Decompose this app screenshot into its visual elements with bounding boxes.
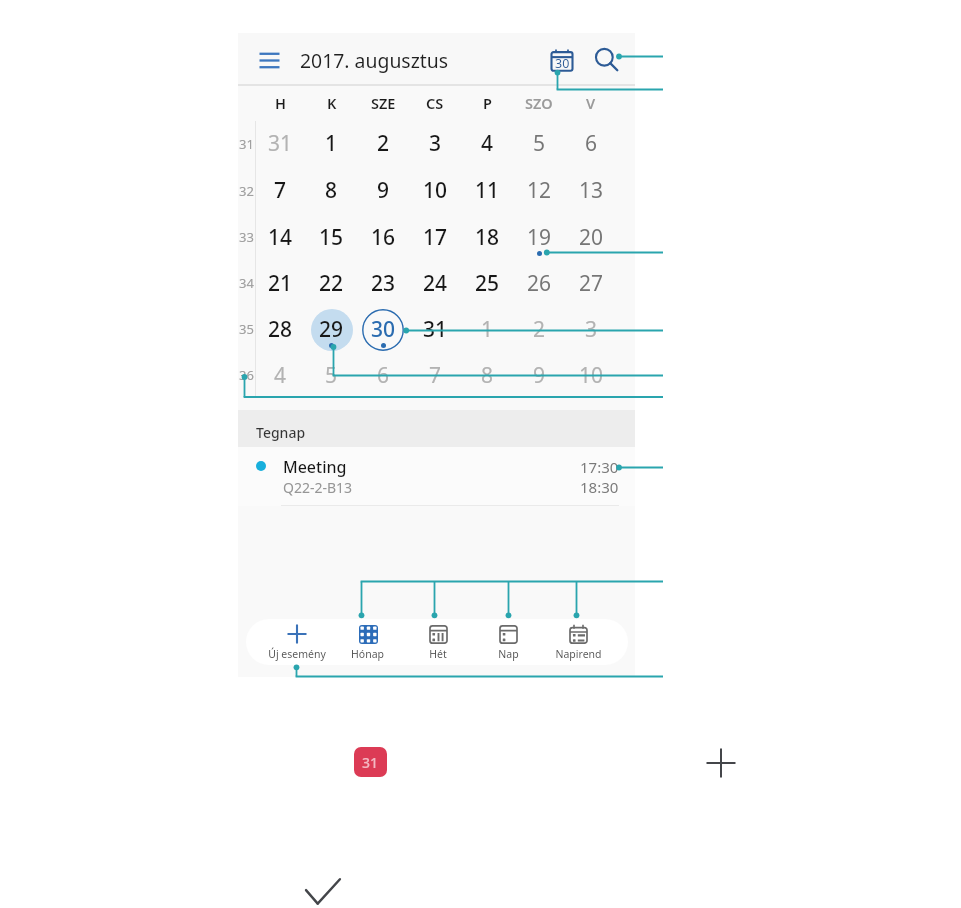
button[interactable]: Nap — [473, 619, 543, 665]
button[interactable]: 9 — [357, 168, 409, 215]
button[interactable]: 4 — [461, 121, 513, 168]
staticText: 12 — [527, 176, 552, 205]
button[interactable]: 27 — [565, 261, 617, 307]
staticText: 2 — [533, 315, 546, 344]
button[interactable]: 10 — [409, 168, 461, 215]
button[interactable]: 22 — [306, 261, 357, 307]
button[interactable]: Search — [589, 43, 623, 77]
button[interactable]: 25 — [461, 261, 513, 307]
staticText: 7 — [429, 361, 442, 390]
button[interactable]: 17 — [409, 215, 461, 261]
staticText: 18:30 — [580, 477, 619, 497]
button[interactable]: 15 — [306, 215, 357, 261]
staticText: 7 — [274, 176, 287, 205]
button[interactable]: 1 — [461, 307, 513, 353]
button[interactable]: Hónap — [332, 619, 403, 665]
button[interactable]: 10 — [565, 353, 617, 399]
button[interactable]: Hét — [403, 619, 473, 665]
button[interactable]: 3 — [565, 307, 617, 353]
button[interactable]: 13 — [565, 168, 617, 215]
staticText: 1 — [325, 129, 338, 158]
button[interactable]: 7 — [409, 353, 461, 399]
staticText: 31 — [239, 135, 254, 153]
staticText: 24 — [423, 269, 448, 298]
button[interactable]: Menu — [254, 45, 284, 75]
button[interactable]: 6 — [357, 353, 409, 399]
staticText: 10 — [579, 361, 604, 390]
staticText: 33 — [239, 228, 254, 246]
button[interactable]: 1 — [306, 121, 357, 168]
button[interactable]: Meeting — [238, 447, 635, 506]
staticText: 31 — [423, 315, 448, 344]
button[interactable]: 2 — [513, 307, 565, 353]
staticText: 26 — [527, 269, 552, 298]
staticText: Hónap — [351, 647, 384, 661]
staticText: 34 — [239, 274, 254, 292]
staticText: Nap — [498, 647, 519, 661]
button[interactable]: 29 — [306, 307, 357, 353]
staticText: 15 — [319, 223, 344, 252]
staticText: H — [275, 93, 286, 113]
staticText: 9 — [377, 176, 390, 205]
button[interactable]: 4 — [255, 353, 306, 399]
button[interactable]: 16 — [357, 215, 409, 261]
staticText: P — [483, 93, 492, 113]
button[interactable]: Go to today — [546, 43, 580, 77]
button[interactable]: 8 — [461, 353, 513, 399]
button[interactable]: 3 — [409, 121, 461, 168]
staticText: 2 — [377, 129, 390, 158]
staticText: 31 — [362, 753, 379, 772]
staticText: SZE — [371, 93, 396, 113]
staticText: Új esemény — [268, 647, 326, 661]
staticText: 30 — [371, 315, 396, 344]
button[interactable]: 12 — [513, 168, 565, 215]
staticText: 2017. augusztus — [300, 47, 449, 73]
staticText: SZO — [525, 93, 553, 113]
staticText: 10 — [423, 176, 448, 205]
staticText: 13 — [579, 176, 604, 205]
button[interactable]: 30 — [357, 307, 409, 353]
button[interactable]: 24 — [409, 261, 461, 307]
button[interactable]: 9 — [513, 353, 565, 399]
button[interactable]: 2 — [357, 121, 409, 168]
button[interactable]: 7 — [255, 168, 306, 215]
button[interactable]: Calendar app icon — [354, 747, 387, 777]
button[interactable]: 28 — [255, 307, 306, 353]
staticText: 6 — [585, 129, 598, 158]
button[interactable]: 11 — [461, 168, 513, 215]
staticText: 9 — [533, 361, 546, 390]
staticText: 27 — [579, 269, 604, 298]
button[interactable]: 26 — [513, 261, 565, 307]
staticText: 11 — [475, 176, 500, 205]
button[interactable]: 5 — [306, 353, 357, 399]
button[interactable]: Új esemény — [261, 619, 332, 665]
button[interactable]: Napirend — [543, 619, 613, 665]
button[interactable]: 6 — [565, 121, 617, 168]
staticText: 6 — [377, 361, 390, 390]
button[interactable]: 21 — [255, 261, 306, 307]
button[interactable]: 14 — [255, 215, 306, 261]
staticText: 29 — [319, 315, 344, 344]
button[interactable]: 19 — [513, 215, 565, 261]
staticText: 18 — [475, 223, 500, 252]
button[interactable]: 31 — [409, 307, 461, 353]
staticText: CS — [426, 93, 444, 113]
staticText: 4 — [274, 361, 287, 390]
button[interactable]: 20 — [565, 215, 617, 261]
staticText: 17:30 — [580, 457, 619, 477]
staticText: 19 — [527, 223, 552, 252]
staticText: 22 — [319, 269, 344, 298]
button[interactable]: 18 — [461, 215, 513, 261]
button[interactable]: 8 — [306, 168, 357, 215]
staticText: 23 — [371, 269, 396, 298]
staticText: V — [586, 93, 596, 113]
button[interactable]: 23 — [357, 261, 409, 307]
other: Add — [706, 748, 736, 778]
button[interactable]: 31 — [255, 121, 306, 168]
staticText: 5 — [325, 361, 338, 390]
other: Done — [300, 872, 345, 908]
staticText: 3 — [429, 129, 442, 158]
staticText: 36 — [239, 366, 254, 384]
button[interactable]: 5 — [513, 121, 565, 168]
staticText: 20 — [579, 223, 604, 252]
